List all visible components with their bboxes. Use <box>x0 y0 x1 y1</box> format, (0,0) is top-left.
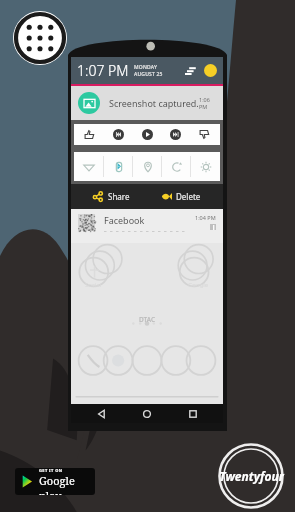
button[interactable]: Play <box>134 124 161 145</box>
staticText: Screenshot captured. <box>109 97 199 109</box>
button[interactable]: Next <box>162 124 189 145</box>
button[interactable]: Delete <box>153 184 209 209</box>
button[interactable]: Brightness <box>191 152 220 181</box>
staticText: MONDAY <box>134 64 158 71</box>
staticText: Google <box>188 281 209 289</box>
button[interactable]: Screenshot captured. <box>71 86 223 120</box>
button[interactable]: Back <box>87 404 117 423</box>
staticText: AUGUST 25 <box>134 71 163 78</box>
button[interactable]: Share <box>85 184 138 209</box>
button[interactable]: Thumbs up <box>76 124 103 145</box>
button[interactable]: Facebook <box>71 209 223 243</box>
staticText: DTAC <box>139 315 156 324</box>
staticText: Google play <box>39 473 95 495</box>
button[interactable]: Thumbs down <box>191 124 218 145</box>
button[interactable]: Previous <box>105 124 132 145</box>
button[interactable]: Wi-Fi <box>74 152 104 181</box>
staticText: GET IT ON <box>39 468 63 473</box>
button[interactable]: Recent apps <box>178 404 208 423</box>
staticText: Twentyfour <box>219 468 284 484</box>
staticText: Share <box>108 191 130 202</box>
staticText: 1:07 PM <box>77 61 129 80</box>
staticText: 1:06 PM <box>199 96 216 110</box>
button[interactable]: Auto rotate <box>162 152 191 181</box>
staticText: Facebook <box>104 214 145 226</box>
staticText: 1:04 PM <box>195 214 216 221</box>
button[interactable]: GET IT ON <box>15 468 95 495</box>
staticText: Delete <box>176 191 201 202</box>
button[interactable]: Location <box>133 152 162 181</box>
staticText: Social <box>85 281 102 289</box>
button[interactable]: Bluetooth <box>104 152 133 181</box>
button[interactable]: Open app drawer <box>13 11 67 65</box>
button[interactable]: Home <box>132 404 162 423</box>
